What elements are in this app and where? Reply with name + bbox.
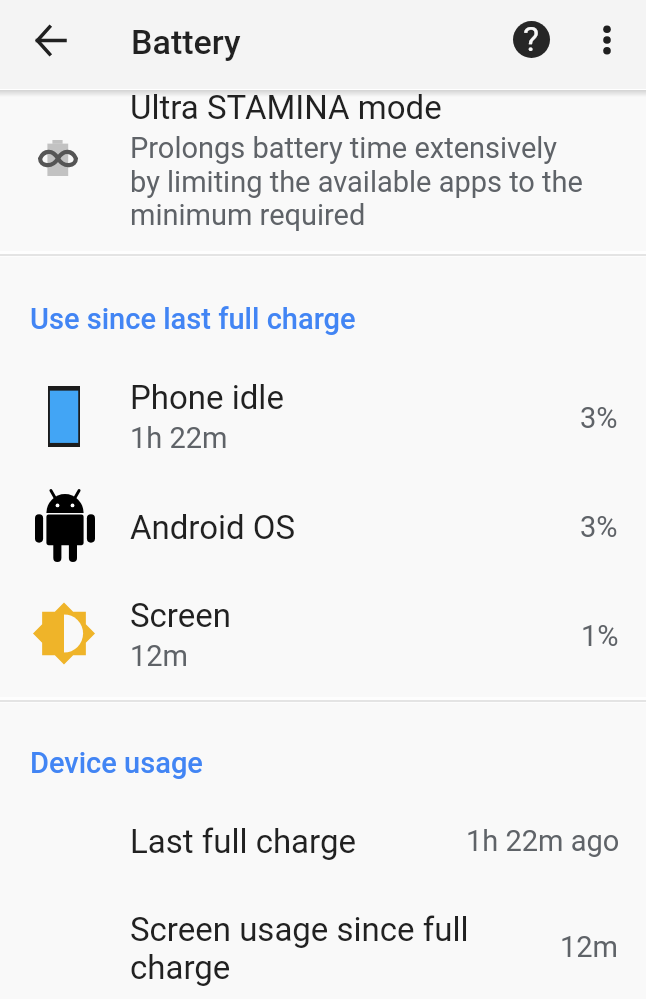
staticText: Ultra STAMINA mode (130, 88, 442, 127)
button[interactable] (0, 583, 646, 686)
staticText: Use since last full charge (30, 302, 356, 336)
staticText: 3% (580, 401, 618, 435)
button[interactable] (0, 478, 646, 573)
staticText: 12m (560, 930, 619, 964)
button[interactable] (0, 810, 646, 882)
staticText: Screen usage since full charge (130, 910, 480, 987)
staticText: Battery (131, 22, 241, 62)
staticText: 1% (581, 619, 619, 653)
staticText: Phone idle (130, 378, 284, 417)
button[interactable] (0, 365, 646, 468)
staticText: Prolongs battery time extensively by lim… (130, 131, 586, 232)
staticText: 1h 22m ago (466, 824, 620, 858)
staticText: Android OS (130, 508, 296, 547)
button[interactable]: Help (503, 11, 560, 68)
button[interactable] (0, 897, 646, 999)
staticText: Device usage (30, 746, 203, 780)
button[interactable]: More options (578, 11, 635, 68)
staticText: ? (523, 19, 540, 59)
staticText: Screen (130, 596, 231, 635)
staticText: 1h 22m (130, 421, 228, 455)
staticText: Last full charge (130, 822, 356, 861)
button[interactable] (0, 89, 646, 254)
staticText: 12m (130, 639, 189, 673)
button[interactable]: Back (21, 11, 79, 69)
staticText: 3% (580, 510, 618, 544)
